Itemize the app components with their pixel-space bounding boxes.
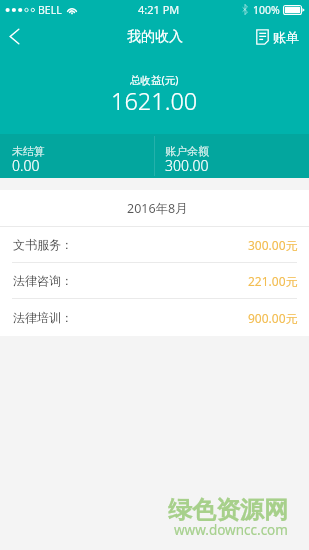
staticText: 221.00元 bbox=[248, 273, 298, 289]
button[interactable]: 文书服务： bbox=[0, 227, 309, 262]
staticText: 绿色资源网 bbox=[168, 495, 288, 525]
staticText: 100% bbox=[253, 3, 280, 17]
staticText: 我的收入 bbox=[127, 28, 183, 46]
button[interactable]: 账单 bbox=[256, 19, 309, 55]
staticText: 1621.00 bbox=[111, 85, 198, 117]
staticText: 法律培训： bbox=[13, 310, 73, 325]
staticText: 0.00 bbox=[12, 156, 40, 175]
staticText: 4:21 PM bbox=[138, 2, 180, 17]
button[interactable]: 未结算 bbox=[0, 134, 154, 178]
staticText: 900.00元 bbox=[248, 310, 298, 326]
staticText: 300.00元 bbox=[248, 237, 298, 253]
staticText: 法律咨询： bbox=[13, 273, 73, 288]
staticText: 总收益(元) bbox=[130, 73, 179, 87]
staticText: www.downcc.com bbox=[174, 521, 288, 539]
button[interactable]: 账户余额 bbox=[154, 134, 309, 178]
button[interactable]: Back bbox=[0, 19, 32, 55]
button[interactable]: 法律咨询： bbox=[0, 263, 309, 298]
staticText: 账单 bbox=[273, 29, 299, 45]
staticText: 账户余额 bbox=[165, 144, 209, 158]
staticText: 未结算 bbox=[12, 144, 45, 158]
staticText: 2016年8月 bbox=[127, 200, 188, 217]
staticText: 300.00 bbox=[165, 156, 209, 175]
button[interactable]: 法律培训： bbox=[0, 299, 309, 336]
staticText: BELL bbox=[38, 3, 62, 17]
staticText: 文书服务： bbox=[13, 237, 73, 252]
